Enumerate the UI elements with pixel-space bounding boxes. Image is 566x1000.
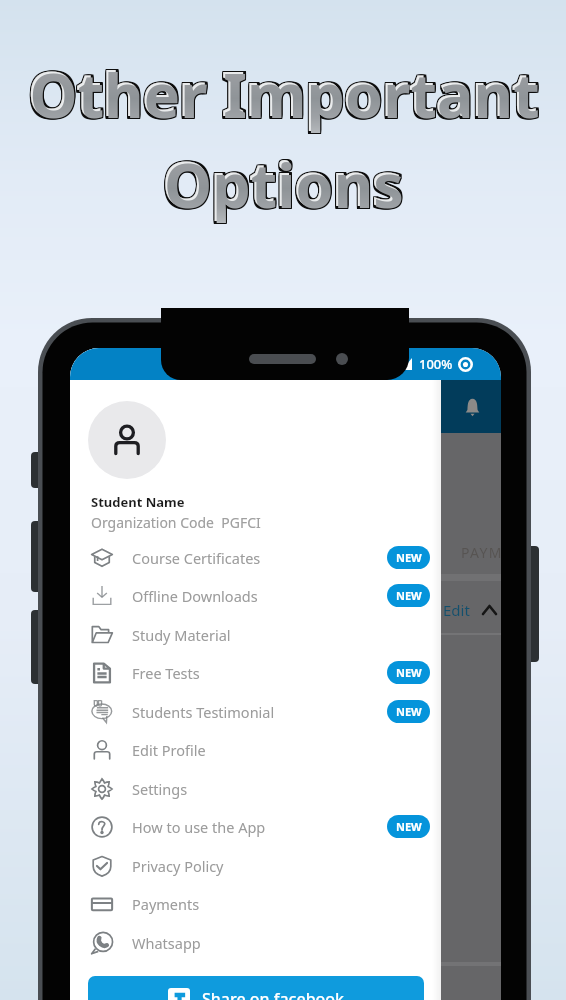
staticText: Options [165,144,405,227]
staticText: Other Important [29,53,540,136]
staticText: Other Important [28,53,539,136]
staticText: Options [164,142,404,225]
button[interactable]: Study Material [70,615,441,654]
staticText: Other Important [29,52,540,135]
staticText: NEW [396,588,422,603]
staticText: Other Important [30,51,541,134]
staticText: Course Certificates [132,548,261,568]
staticText: Organization Code PGFCI [91,513,261,532]
staticText: Other Important [30,50,541,133]
staticText: Offline Downloads [132,586,258,606]
staticText: Other Important [30,54,541,137]
staticText: Study Material [132,625,231,645]
staticText: Options [164,143,404,226]
staticText: NEW [396,819,422,834]
staticText: NEW [396,665,422,680]
staticText: 100% [419,355,453,373]
staticText: Options [162,140,402,223]
staticText: Options [163,141,403,224]
staticText: Settings [132,779,188,799]
staticText: Whatsapp [132,933,201,953]
staticText: Options [165,142,405,225]
staticText: Free Tests [132,663,200,683]
staticText: Share on facebook [202,988,345,1000]
staticText: Options [164,141,404,224]
staticText: Students Testimonial [132,702,275,722]
staticText: Other Important [27,52,538,135]
staticText: Options [163,144,403,227]
staticText: Options [162,141,402,224]
staticText: Other Important [28,50,539,133]
staticText: Options [162,142,402,225]
button[interactable]: Profile photo [88,401,166,479]
staticText: Options [164,140,404,223]
staticText: Other Important [27,51,538,134]
other: Notifications [464,397,481,418]
staticText: Options [162,144,402,227]
staticText: Options [161,144,401,227]
button[interactable]: Privacy Policy [70,846,441,885]
staticText: Options [161,141,401,224]
staticText: Options [162,141,402,224]
staticText: Options [161,140,401,223]
staticText: NEW [396,704,422,719]
staticText: Options [163,143,403,226]
button[interactable]: Whatsapp [70,923,441,962]
button[interactable]: Free Tests [70,653,441,692]
button[interactable]: Students Testimonial [70,692,441,731]
staticText: Other Important [26,54,537,137]
staticText: Other Important [30,53,541,136]
staticText: Options [162,143,402,226]
staticText: Student Name [91,493,185,511]
staticText: Other Important [29,50,540,133]
staticText: NEW [396,550,422,565]
staticText: Edit [443,600,470,620]
staticText: Other Important [26,50,537,133]
staticText: Options [165,140,405,223]
staticText: Other Important [29,53,540,136]
staticText: Options [161,142,401,225]
button[interactable]: Payments [70,884,441,923]
staticText: Other Important [29,51,540,134]
staticText: Privacy Policy [132,856,224,876]
staticText: Other Important [29,54,540,137]
staticText: Other Important [30,52,541,135]
staticText: Other Important [27,53,538,136]
button[interactable]: Course Certificates [70,538,441,577]
button[interactable]: How to use the App [70,807,441,846]
button[interactable]: Share on facebook [88,976,424,1000]
staticText: Other Important [27,54,538,137]
button[interactable]: Offline Downloads [70,576,441,615]
staticText: Options [163,140,403,223]
staticText: Options [165,143,405,226]
staticText: How to use the App [132,817,266,837]
staticText: Other Important [27,50,538,133]
staticText: Other Important [26,53,537,136]
staticText: Edit Profile [132,740,206,760]
other: Battery full [458,357,473,372]
staticText: Options [164,143,404,226]
button[interactable]: Edit Profile [70,730,441,769]
staticText: Options [161,143,401,226]
staticText: Other Important [28,51,539,134]
staticText: Options [164,144,404,227]
staticText: Other Important [26,52,537,135]
staticText: Other Important [28,54,539,137]
staticText: Options [165,141,405,224]
staticText: Other Important [27,51,538,134]
staticText: PAYMENT [461,543,501,562]
staticText: Other Important [26,51,537,134]
staticText: Payments [132,894,200,914]
button[interactable]: Settings [70,769,441,808]
